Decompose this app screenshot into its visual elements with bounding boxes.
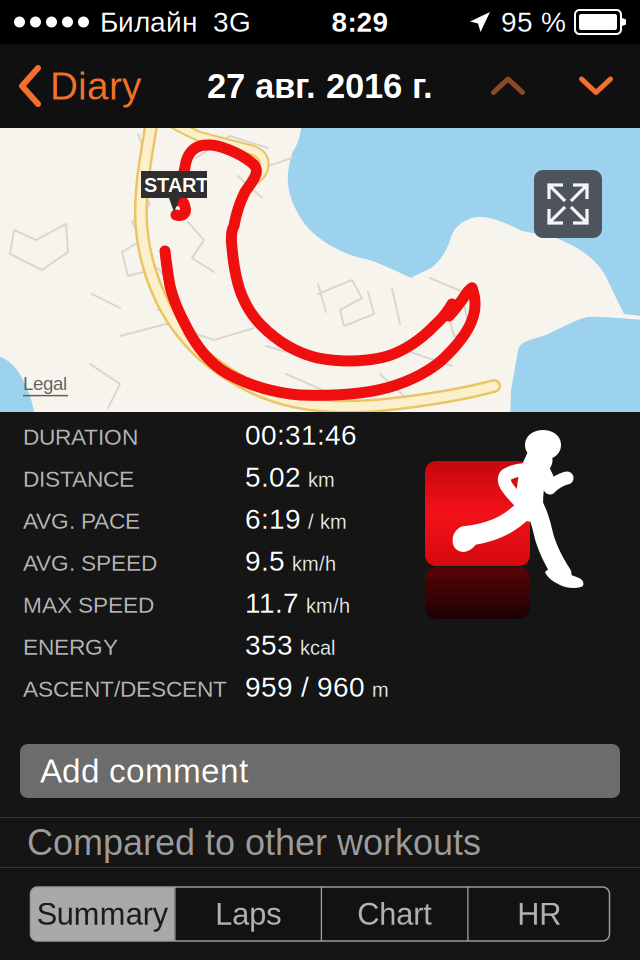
staticText: 9.5 [245, 545, 285, 577]
staticText: 11.7 [245, 587, 299, 619]
staticText: AVG. PACE [23, 508, 140, 533]
button[interactable]: Laps [176, 887, 321, 941]
staticText: Diary [50, 64, 141, 108]
staticText: 959 / 960 [245, 671, 365, 703]
staticText: 353 [245, 629, 293, 661]
staticText: AVG. SPEED [23, 550, 157, 575]
staticText: Add comment [40, 752, 248, 790]
staticText: km [308, 469, 335, 491]
staticText: 8:29 [331, 6, 388, 38]
staticText: Билайн [100, 6, 197, 38]
button[interactable]: Full screen map [534, 170, 602, 238]
staticText: ASCENT/DESCENT [23, 676, 227, 701]
staticText: 00:31:46 [245, 419, 357, 451]
staticText: / km [308, 511, 347, 533]
staticText: Legal [23, 373, 67, 394]
button[interactable]: Previous workout [464, 44, 552, 128]
staticText: 6:19 [245, 503, 301, 535]
staticText: 5.02 [245, 461, 301, 493]
staticText: m [372, 679, 389, 701]
button[interactable]: Next workout [552, 44, 640, 128]
staticText: DURATION [23, 424, 138, 449]
staticText: Laps [215, 897, 281, 931]
button[interactable]: HR [469, 887, 610, 941]
staticText: 95 % [501, 6, 566, 38]
staticText: Chart [357, 897, 432, 931]
button[interactable]: Add comment [0, 744, 640, 798]
staticText: ENERGY [23, 634, 118, 659]
staticText: Summary [37, 897, 168, 931]
button[interactable]: Chart [322, 887, 467, 941]
staticText: MAX SPEED [23, 592, 154, 617]
staticText: Compared to other workouts [27, 822, 481, 863]
staticText: START [144, 174, 208, 196]
staticText: km/h [306, 595, 350, 617]
staticText: DISTANCE [23, 466, 134, 491]
staticText: 27 авг. 2016 г. [207, 67, 433, 105]
staticText: kcal [300, 637, 335, 659]
button[interactable]: Diary [0, 44, 153, 128]
staticText: HR [517, 897, 561, 931]
staticText: km/h [292, 553, 336, 575]
button[interactable]: Summary [30, 887, 174, 941]
staticText: 3G [213, 6, 251, 38]
